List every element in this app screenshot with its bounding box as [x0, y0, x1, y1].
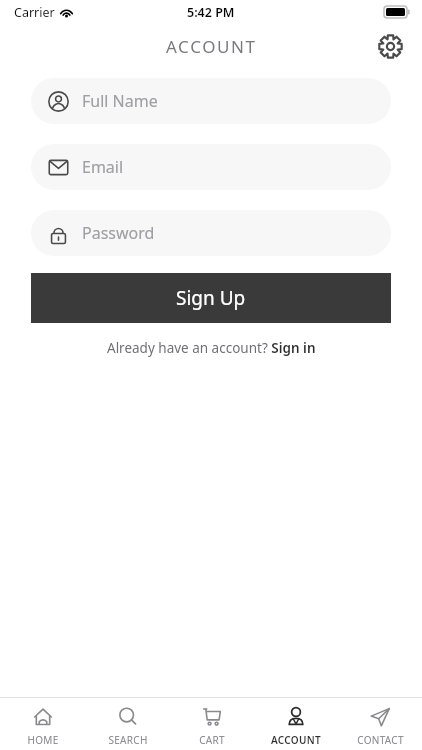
- button[interactable]: Already have an account? Sign in: [101, 337, 322, 359]
- staticText: ACCOUNT: [166, 35, 257, 58]
- staticText: SEARCH: [108, 733, 148, 747]
- staticText: Already have an account? Sign in: [107, 339, 316, 357]
- staticText: Carrier: [14, 4, 55, 21]
- button[interactable]: CART: [170, 706, 254, 750]
- button[interactable]: SEARCH: [85, 706, 170, 750]
- staticText: 5:42 PM: [187, 4, 235, 21]
- button[interactable]: Full Name: [31, 78, 391, 124]
- staticText: HOME: [27, 733, 59, 747]
- button[interactable]: Email: [31, 144, 391, 190]
- button[interactable]: Settings: [370, 26, 410, 66]
- button[interactable]: Password: [31, 210, 391, 256]
- staticText: CONTACT: [357, 733, 404, 747]
- button[interactable]: Sign Up: [31, 273, 391, 323]
- staticText: CART: [199, 733, 225, 747]
- staticText: Email: [82, 156, 124, 178]
- button[interactable]: CONTACT: [338, 706, 422, 750]
- staticText: Sign Up: [176, 285, 246, 311]
- button[interactable]: ACCOUNT: [254, 706, 338, 750]
- staticText: Full Name: [82, 90, 158, 112]
- button[interactable]: HOME: [0, 706, 85, 750]
- staticText: Password: [82, 222, 155, 244]
- staticText: ACCOUNT: [271, 733, 321, 747]
